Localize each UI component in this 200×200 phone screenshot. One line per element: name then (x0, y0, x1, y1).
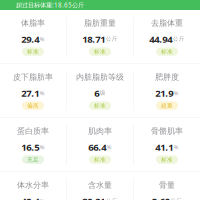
staticText: 去脂体重 (151, 18, 183, 28)
staticText: 内脏脂肪等级 (76, 72, 124, 82)
staticText: 6 (94, 86, 99, 100)
staticText: 公斤 (173, 35, 185, 43)
staticText: 肌肉率 (88, 126, 112, 136)
staticText: 标准 (94, 102, 106, 109)
staticText: 含水量 (88, 180, 112, 190)
staticText: 66.4 (88, 140, 106, 154)
button[interactable]: 去脂体重 (134, 10, 200, 63)
staticText: 18.71 (82, 32, 105, 46)
staticText: 级 (100, 89, 106, 97)
staticText: 超过目标体重:18.65公斤 (16, 1, 84, 9)
button[interactable]: 蛋白质率 (0, 118, 66, 171)
button[interactable]: 肌肉率 (67, 118, 133, 171)
staticText: % (174, 89, 179, 97)
staticText: 公斤 (170, 197, 182, 200)
staticText: 肥胖度 (155, 72, 179, 82)
button[interactable]: 体水分率 (0, 172, 66, 200)
button[interactable]: 体脂率 (0, 10, 66, 63)
staticText: 体脂率 (21, 18, 45, 28)
staticText: 标准 (27, 48, 39, 55)
staticText: 标准 (94, 48, 106, 55)
staticText: 骨骼肌率 (151, 126, 183, 136)
staticText: 蛋白质率 (17, 126, 49, 136)
staticText: % (107, 143, 112, 151)
staticText: 44.94 (149, 32, 172, 46)
staticText: 公斤 (106, 35, 118, 43)
staticText: 标准 (161, 48, 173, 55)
staticText: 标准 (161, 156, 173, 163)
staticText: 21.9 (155, 86, 173, 100)
staticText: 16.5 (21, 140, 39, 154)
button[interactable]: 骨量 (134, 172, 200, 200)
staticText: 41.1 (155, 140, 173, 154)
staticText: 2.60 (152, 194, 170, 200)
button[interactable]: 内脏脂肪等级 (67, 64, 133, 117)
staticText: 超重 (161, 102, 173, 109)
staticText: 充足 (27, 156, 39, 163)
staticText: 皮下脂肪率 (13, 72, 53, 82)
staticText: 30.91 (82, 194, 105, 200)
staticText: 49.4 (21, 194, 39, 200)
staticText: % (174, 143, 179, 151)
staticText: % (40, 35, 45, 43)
staticText: 体水分率 (17, 180, 49, 190)
staticText: 骨量 (159, 180, 175, 190)
button[interactable]: 含水量 (67, 172, 133, 200)
staticText: 偏高 (27, 102, 39, 109)
staticText: 27.1 (21, 86, 39, 100)
staticText: % (40, 197, 45, 200)
staticText: 脂肪重量 (84, 18, 116, 28)
staticText: % (40, 143, 45, 151)
button[interactable]: 脂肪重量 (67, 10, 133, 63)
button[interactable]: 肥胖度 (134, 64, 200, 117)
staticText: 29.4 (21, 32, 39, 46)
button[interactable]: 骨骼肌率 (134, 118, 200, 171)
button[interactable]: 皮下脂肪率 (0, 64, 66, 117)
staticText: 标准 (94, 156, 106, 163)
staticText: % (40, 89, 45, 97)
staticText: 公斤 (106, 197, 118, 200)
